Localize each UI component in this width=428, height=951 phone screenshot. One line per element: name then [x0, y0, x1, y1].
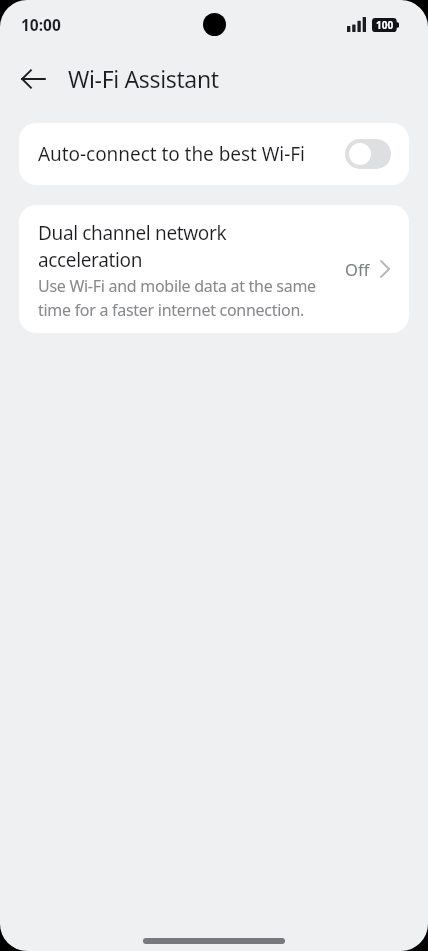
- staticText: Off: [345, 258, 370, 280]
- button[interactable]: Dual channel network acceleration: [19, 205, 409, 333]
- staticText: 10:00: [21, 14, 61, 35]
- staticText: 100: [376, 18, 394, 32]
- staticText: Wi-Fi Assistant: [68, 63, 219, 94]
- button[interactable]: Auto-connect to the best Wi-Fi: [19, 123, 409, 185]
- button[interactable]: Back: [11, 57, 55, 101]
- staticText: Use Wi-Fi and mobile data at the same ti…: [38, 273, 323, 321]
- button[interactable]: Auto-connect to the best Wi-Fi toggle: [345, 139, 391, 169]
- staticText: Auto-connect to the best Wi-Fi: [38, 141, 345, 167]
- staticText: Dual channel network acceleration: [38, 219, 323, 273]
